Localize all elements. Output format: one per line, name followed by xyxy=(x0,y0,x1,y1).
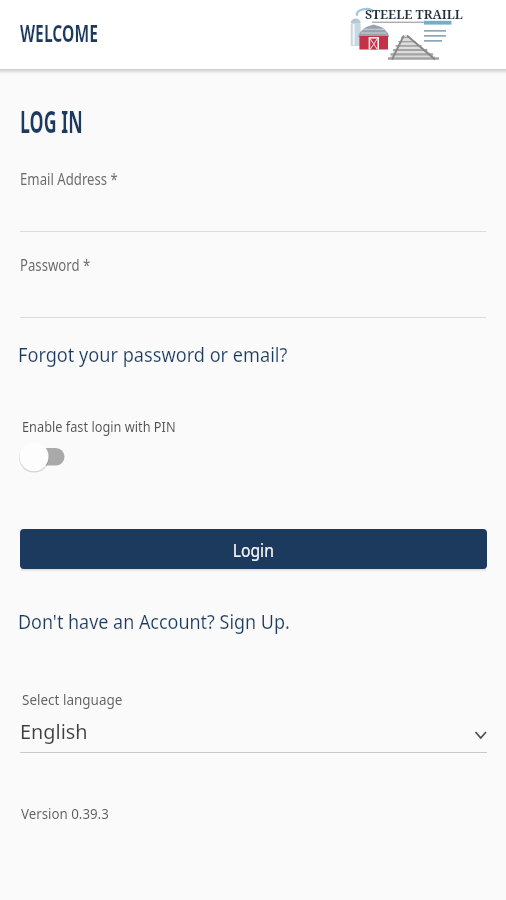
staticText: STEELE TRAILL xyxy=(365,6,463,23)
button[interactable] xyxy=(19,441,66,472)
button[interactable]: Login xyxy=(20,529,487,569)
staticText: Enable fast login with PIN xyxy=(22,416,176,436)
staticText: WELCOME xyxy=(20,17,98,48)
staticText: Email Address * xyxy=(20,168,119,189)
staticText: Password * xyxy=(20,254,91,275)
button[interactable]: Forgot your password or email? xyxy=(18,341,288,368)
staticText: English xyxy=(20,718,88,745)
staticText: Login xyxy=(233,537,274,562)
staticText: LOG IN xyxy=(20,100,83,142)
staticText: Select language xyxy=(22,689,122,709)
button[interactable]: English xyxy=(20,715,487,753)
button[interactable]: Don't have an Account? Sign Up. xyxy=(18,608,290,635)
staticText: Version 0.39.3 xyxy=(21,804,109,823)
